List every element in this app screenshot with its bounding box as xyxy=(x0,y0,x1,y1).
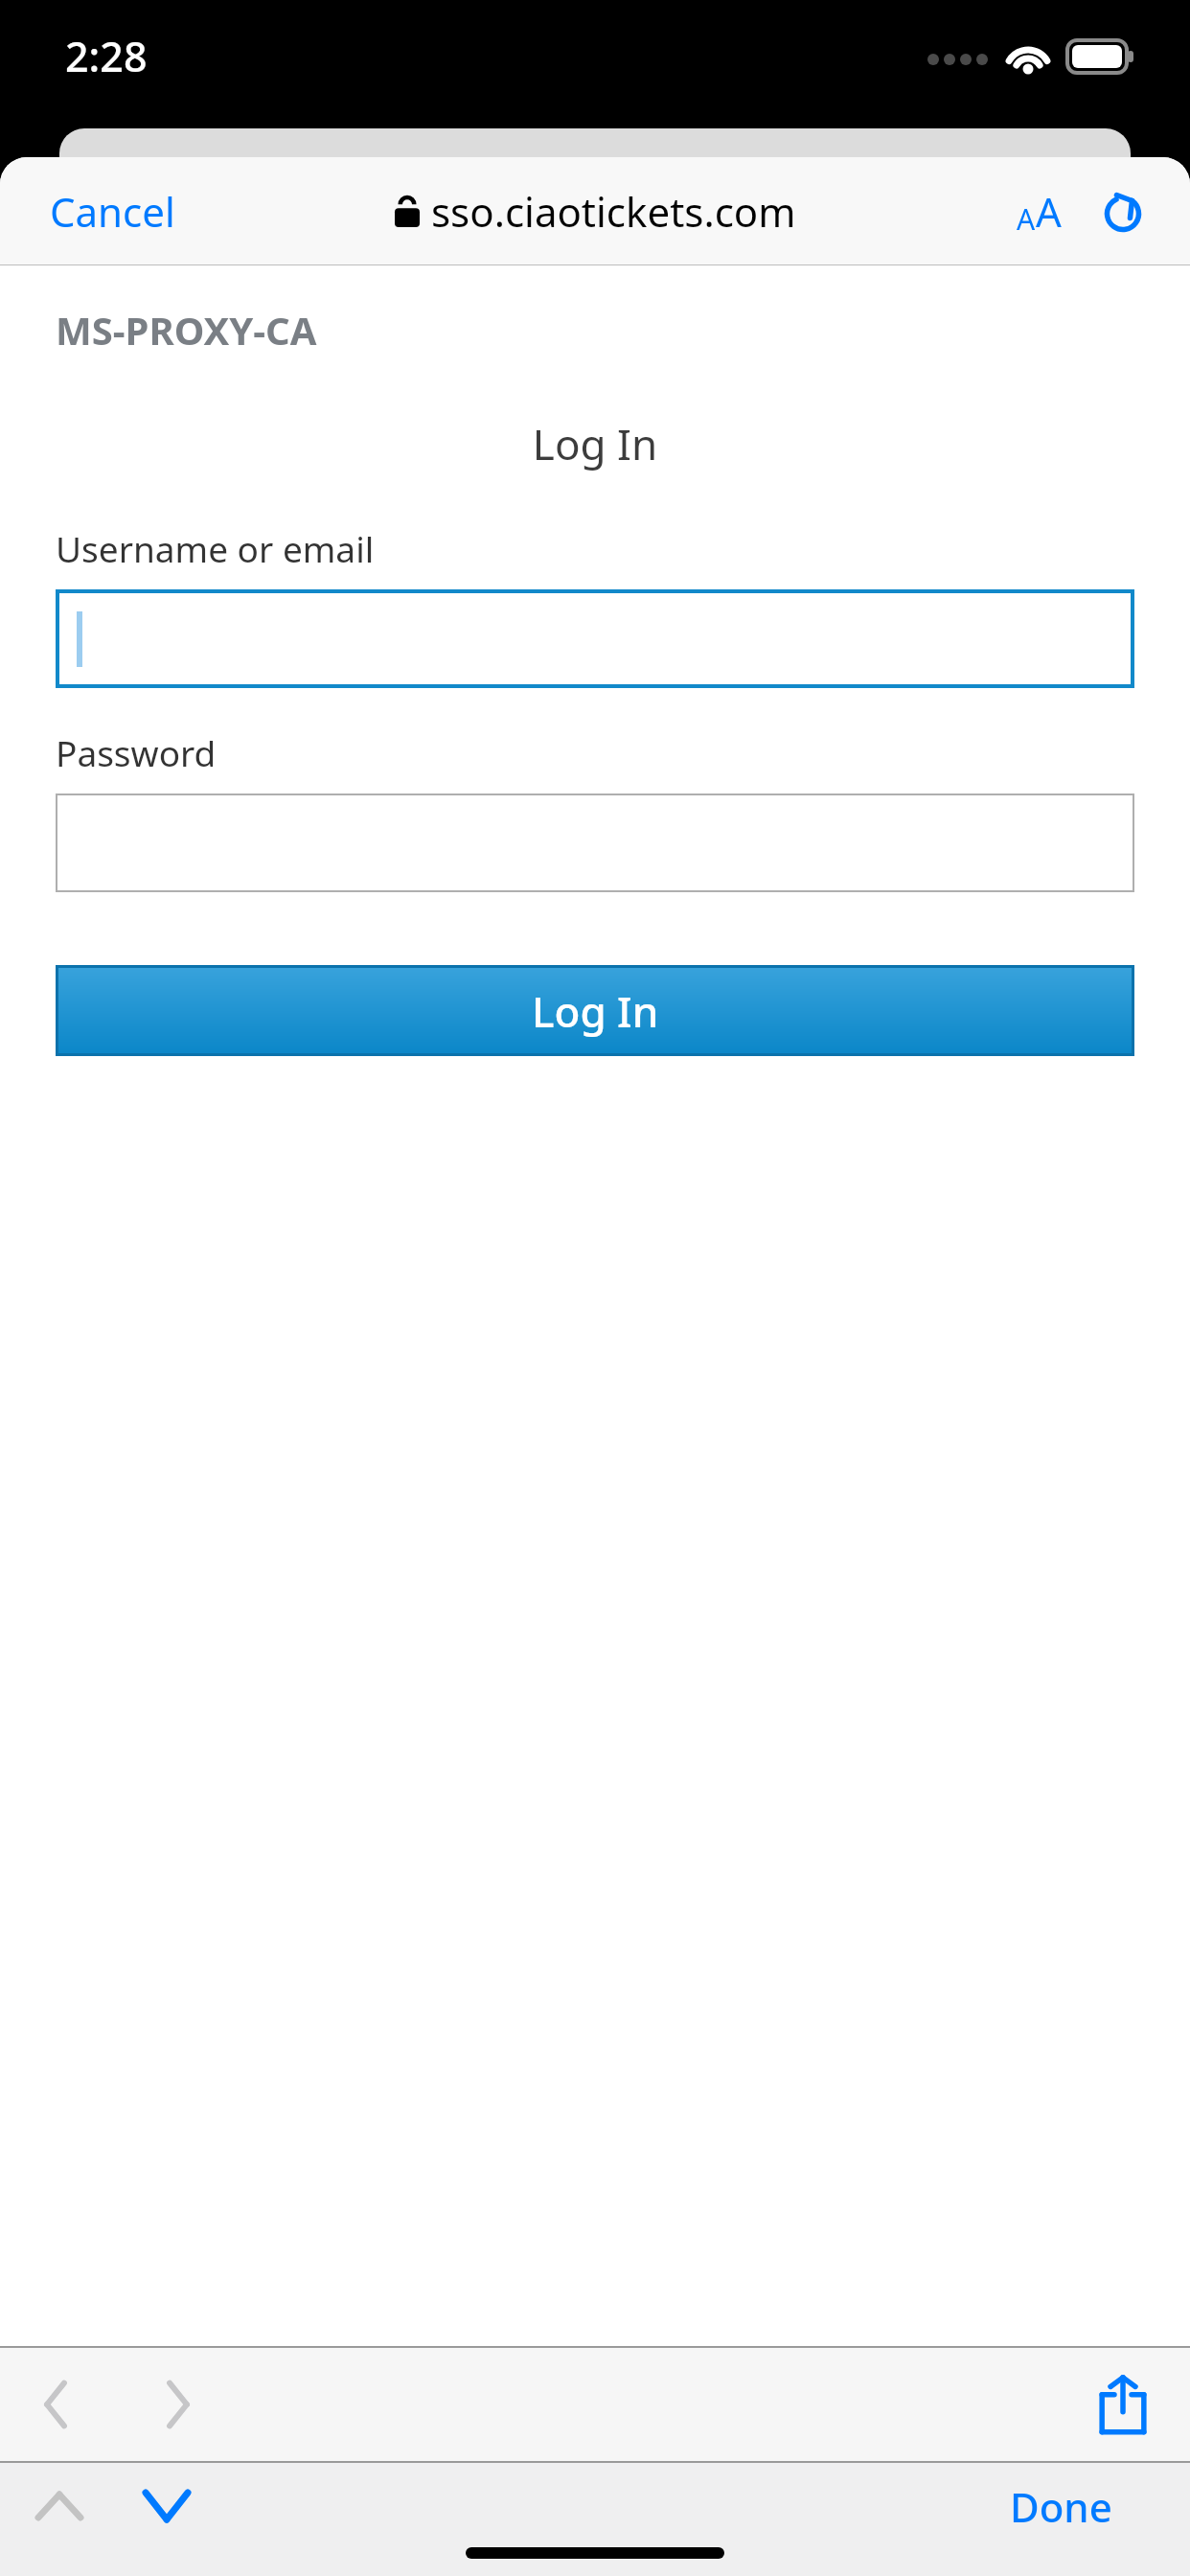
button[interactable]: Reload page xyxy=(1090,179,1156,244)
staticText: Password xyxy=(56,728,217,776)
staticText: sso.ciaotickets.com xyxy=(431,184,796,239)
button[interactable]: Cancel xyxy=(0,171,195,252)
button[interactable]: Back xyxy=(19,2360,92,2449)
button[interactable]: Username or email input xyxy=(56,589,1134,688)
button[interactable]: Done xyxy=(996,2466,1126,2547)
staticText: MS-PROXY-CA xyxy=(56,304,317,356)
button[interactable]: Password input xyxy=(56,793,1134,892)
button[interactable]: Next field xyxy=(123,2474,211,2538)
staticText: Log In xyxy=(0,415,1190,472)
button[interactable]: Forward xyxy=(142,2360,215,2449)
staticText: Log In xyxy=(532,982,659,1040)
button[interactable]: Previous field xyxy=(15,2476,103,2536)
button[interactable]: Log In xyxy=(56,965,1134,1056)
staticText: Username or email xyxy=(56,524,375,572)
staticText: 2:28 xyxy=(65,28,148,84)
staticText: A xyxy=(1036,184,1062,239)
button[interactable]: Share xyxy=(1079,2360,1167,2449)
staticText: A xyxy=(1017,199,1036,239)
button[interactable]: Text size options xyxy=(1001,171,1077,252)
